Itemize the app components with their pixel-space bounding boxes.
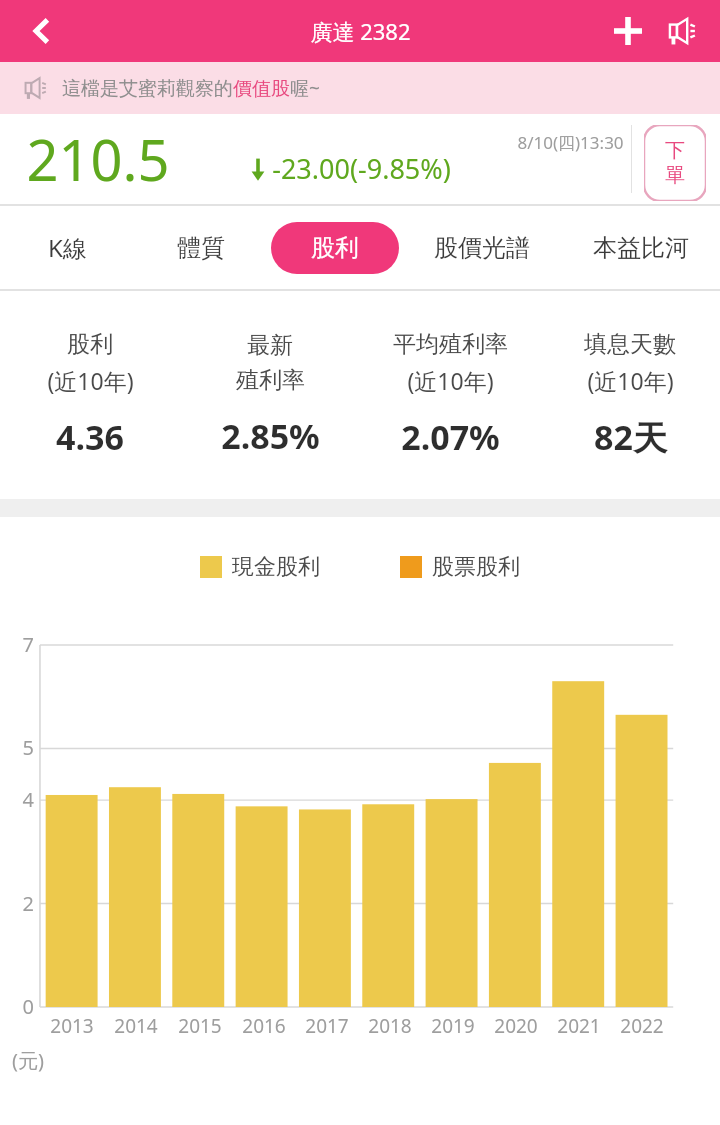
button[interactable]: Announcements — [656, 3, 712, 59]
button[interactable]: 本益比河 — [561, 206, 720, 289]
staticText: 平均殖利率 — [393, 330, 508, 359]
staticText: 最新 — [247, 331, 293, 360]
staticText: 2016 — [242, 1013, 286, 1039]
staticText: 殖利率 — [236, 366, 305, 395]
staticText: 股利 — [311, 233, 359, 263]
staticText: 體質 — [177, 233, 225, 263]
staticText: 2020 — [494, 1013, 538, 1039]
staticText: 填息天數 — [584, 330, 676, 359]
staticText: 2019 — [431, 1013, 475, 1039]
staticText: 0 — [12, 993, 34, 1020]
button[interactable]: 平均殖利率 — [360, 330, 540, 460]
staticText: 7 — [12, 631, 34, 658]
staticText: 2021 — [557, 1013, 601, 1039]
staticText: 2018 — [368, 1013, 412, 1039]
staticText: K線 — [48, 231, 87, 264]
staticText: 下 — [665, 138, 685, 163]
button[interactable]: 股利 — [268, 206, 402, 289]
button[interactable]: Add — [600, 3, 656, 59]
staticText: 股票股利 — [432, 553, 520, 581]
staticText: 股利 — [67, 330, 113, 359]
staticText: 2017 — [305, 1013, 349, 1039]
staticText: (近10年) — [47, 365, 134, 396]
button[interactable]: K線 — [0, 206, 134, 289]
staticText: 股價光譜 — [434, 233, 530, 263]
staticText: -23.00(-9.85%) — [272, 150, 451, 187]
staticText: (近10年) — [407, 365, 494, 396]
staticText: 現金股利 — [232, 553, 320, 581]
staticText: 廣達 2382 — [310, 16, 411, 46]
staticText: 8/10(四)13:30 — [517, 131, 624, 154]
button[interactable]: 最新 — [180, 331, 360, 459]
staticText: 這檔是艾蜜莉觀察的價值股喔~ — [62, 75, 320, 101]
staticText: (近10年) — [587, 365, 674, 396]
button[interactable]: 填息天數 — [540, 330, 720, 460]
staticText: 單 — [665, 163, 685, 188]
staticText: 2014 — [114, 1013, 158, 1039]
staticText: 82天 — [594, 414, 667, 460]
button[interactable]: 股價光譜 — [402, 206, 561, 289]
button[interactable]: 這檔是艾蜜莉觀察的價值股喔~ — [0, 62, 720, 114]
button[interactable]: 股利 — [0, 330, 180, 460]
button[interactable]: 體質 — [134, 206, 268, 289]
button[interactable]: 下 — [644, 125, 706, 201]
staticText: 5 — [12, 734, 34, 761]
staticText: 4 — [12, 786, 34, 813]
staticText: 2 — [12, 890, 34, 917]
staticText: 2013 — [50, 1013, 94, 1039]
staticText: 2022 — [620, 1013, 664, 1039]
staticText: 210.5 — [26, 121, 170, 197]
staticText: 2015 — [178, 1013, 222, 1039]
button[interactable]: Back — [14, 3, 70, 59]
staticText: (元) — [12, 1047, 44, 1074]
staticText: 2.07% — [401, 414, 500, 460]
staticText: 本益比河 — [593, 233, 689, 263]
staticText: 4.36 — [56, 414, 124, 460]
staticText: 2.85% — [221, 413, 320, 459]
